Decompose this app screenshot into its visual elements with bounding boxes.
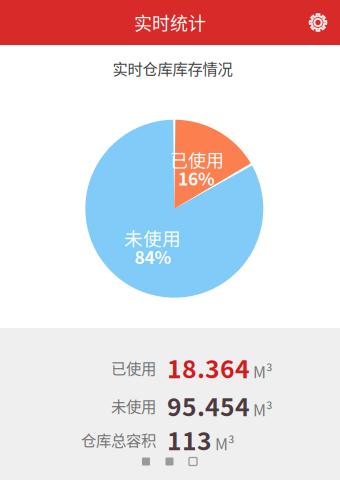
staticText: 113: [167, 422, 212, 457]
staticText: 仓库总容积: [81, 428, 156, 451]
button[interactable]: Home: [165, 457, 173, 465]
staticText: 未使用: [111, 394, 156, 417]
staticText: M³: [215, 432, 235, 455]
staticText: 已使用: [170, 146, 224, 173]
staticText: M³: [253, 360, 273, 383]
staticText: M³: [253, 398, 273, 421]
button[interactable]: Recents: [142, 457, 150, 465]
button[interactable]: Settings: [296, 0, 340, 45]
staticText: 18.364: [167, 350, 250, 385]
staticText: 95.454: [167, 388, 250, 423]
staticText: 实时仓库库存情况: [112, 57, 232, 79]
staticText: 未使用: [124, 224, 181, 251]
staticText: 实时统计: [134, 9, 206, 36]
staticText: 已使用: [111, 356, 156, 379]
button[interactable]: Back: [189, 457, 197, 465]
staticText: 16%: [178, 165, 215, 191]
staticText: 84%: [134, 244, 171, 269]
